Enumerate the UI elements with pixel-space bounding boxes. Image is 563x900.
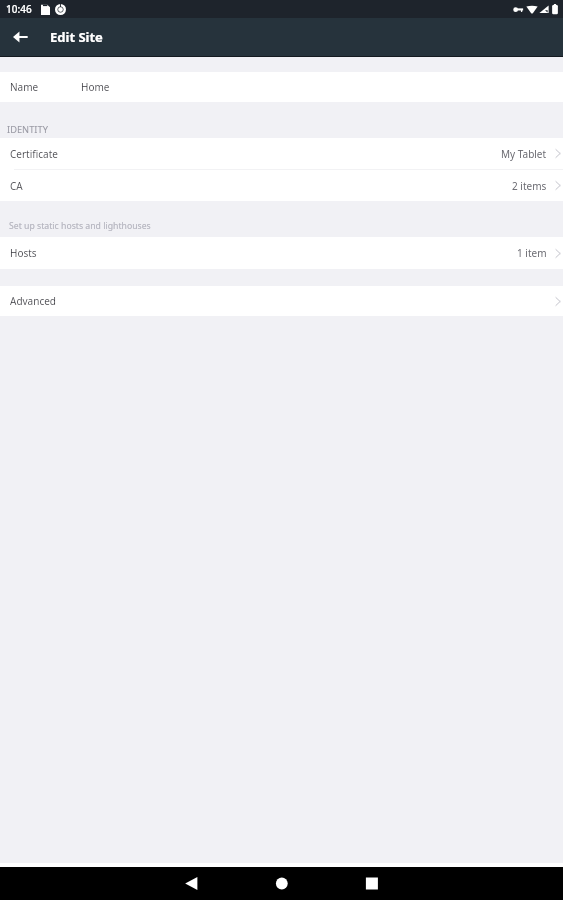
staticText: 10:46 [6,2,32,16]
button[interactable]: Certificate [0,138,563,169]
staticText: Home [81,80,110,94]
staticText: 2 items [512,179,547,193]
button[interactable]: Name [0,72,563,102]
staticText: My Tablet [501,147,547,161]
staticText: Hosts [10,246,37,260]
button[interactable]: Hosts [0,237,563,269]
button[interactable]: Home [187,867,375,900]
button[interactable]: CA [0,170,563,201]
staticText: IDENTITY [7,123,48,136]
button[interactable]: Recents [375,867,563,900]
staticText: Certificate [10,147,58,161]
button[interactable]: Back [0,867,187,900]
staticText: Edit Site [50,28,103,46]
staticText: 1 item [517,246,547,260]
button[interactable]: Advanced [0,286,563,316]
staticText: Set up static hosts and lighthouses [9,220,151,232]
staticText: CA [10,179,23,193]
staticText: Advanced [10,294,56,308]
staticText: Name [10,80,39,94]
button[interactable]: Back [0,18,39,56]
